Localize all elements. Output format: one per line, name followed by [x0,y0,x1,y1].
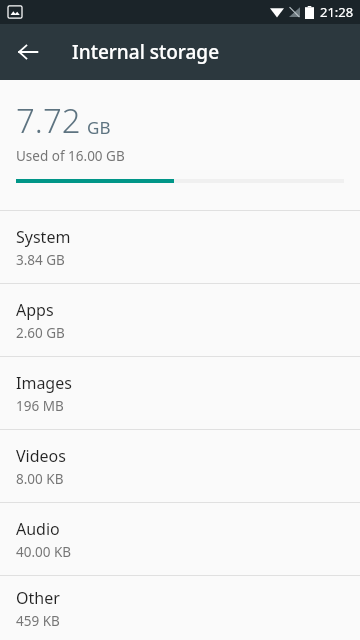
staticText: 3.84 GB [16,251,65,269]
button[interactable]: Images [0,357,360,429]
staticText: 459 KB [16,612,60,630]
button[interactable]: Audio [0,503,360,575]
staticText: 21:28 [320,3,354,21]
staticText: 7.72 [16,98,81,143]
staticText: 196 MB [16,397,64,415]
staticText: Videos [16,445,66,467]
button[interactable]: Videos [0,430,360,502]
button[interactable]: System [0,211,360,283]
staticText: Apps [16,299,54,321]
button[interactable]: Other [0,576,360,640]
staticText: GB [87,116,111,139]
button[interactable]: Apps [0,284,360,356]
staticText: Images [16,372,72,394]
button[interactable]: Back [4,28,52,76]
staticText: Other [16,587,60,609]
staticText: 2.60 GB [16,324,65,342]
staticText: Internal storage [72,39,220,65]
staticText: Used of 16.00 GB [16,147,125,165]
staticText: Audio [16,518,60,540]
staticText: 8.00 KB [16,470,64,488]
staticText: System [16,226,71,248]
staticText: 40.00 KB [16,543,72,561]
